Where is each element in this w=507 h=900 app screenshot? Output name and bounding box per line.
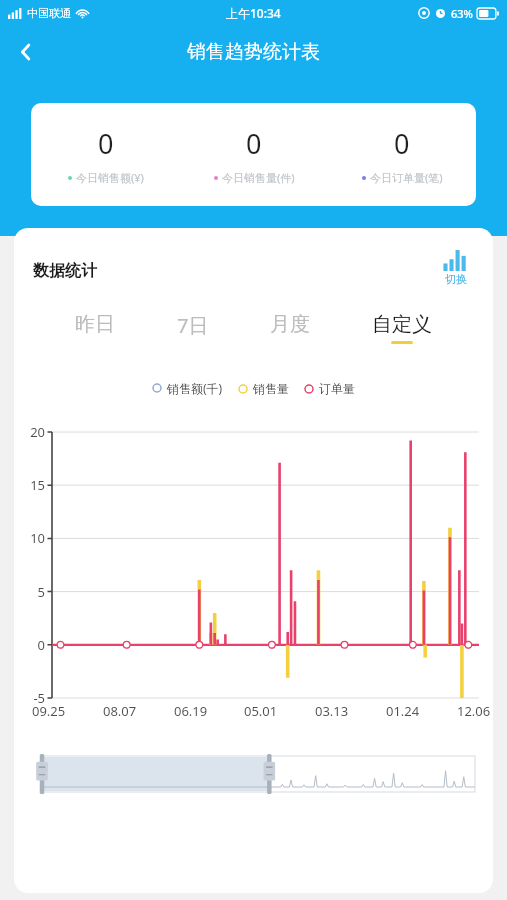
button[interactable]: 昨日: [65, 308, 125, 348]
staticText: 0: [14, 636, 45, 654]
staticText: 63%: [451, 6, 473, 21]
button[interactable]: 0: [328, 125, 476, 185]
staticText: 08.07: [103, 702, 137, 720]
staticText: 0: [394, 125, 410, 162]
staticText: -5: [14, 689, 45, 707]
staticText: 今日销售额(¥): [76, 170, 144, 185]
button[interactable]: 月度: [260, 308, 320, 348]
staticText: 中国联通: [27, 6, 71, 20]
button[interactable]: 自定义: [362, 308, 442, 348]
staticText: 09.25: [32, 702, 66, 720]
staticText: 15: [14, 476, 45, 494]
staticText: 数据统计: [33, 261, 97, 281]
staticText: 自定义: [372, 312, 432, 337]
staticText: 切换: [445, 272, 467, 286]
staticText: 5: [14, 583, 45, 601]
staticText: 昨日: [75, 312, 115, 337]
staticText: 01.24: [386, 702, 420, 720]
staticText: 今日销售量(件): [222, 170, 295, 185]
button[interactable]: Back: [0, 26, 52, 78]
staticText: 订单量: [319, 381, 355, 396]
button[interactable]: 切换图表: [438, 246, 473, 290]
staticText: 0: [98, 125, 114, 162]
button[interactable]: 7日: [167, 308, 219, 350]
staticText: 10: [14, 529, 45, 547]
button[interactable]: 销售量: [238, 381, 289, 396]
staticText: 销售趋势统计表: [187, 40, 320, 64]
staticText: 月度: [270, 312, 310, 337]
staticText: 销售量: [253, 381, 289, 396]
staticText: 20: [14, 423, 45, 441]
staticText: 7日: [177, 312, 209, 339]
staticText: 12.06: [457, 702, 491, 720]
staticText: 06.19: [174, 702, 208, 720]
button[interactable]: 0: [31, 125, 180, 185]
button[interactable]: 订单量: [304, 381, 355, 396]
staticText: 上午10:34: [226, 5, 281, 21]
staticText: 0: [246, 125, 262, 162]
staticText: 销售额(千): [167, 380, 223, 396]
staticText: 05.01: [244, 702, 278, 720]
button[interactable]: 销售额(千): [152, 380, 223, 396]
staticText: 03.13: [315, 702, 349, 720]
staticText: 今日订单量(笔): [370, 170, 443, 185]
button[interactable]: 0: [180, 125, 328, 185]
